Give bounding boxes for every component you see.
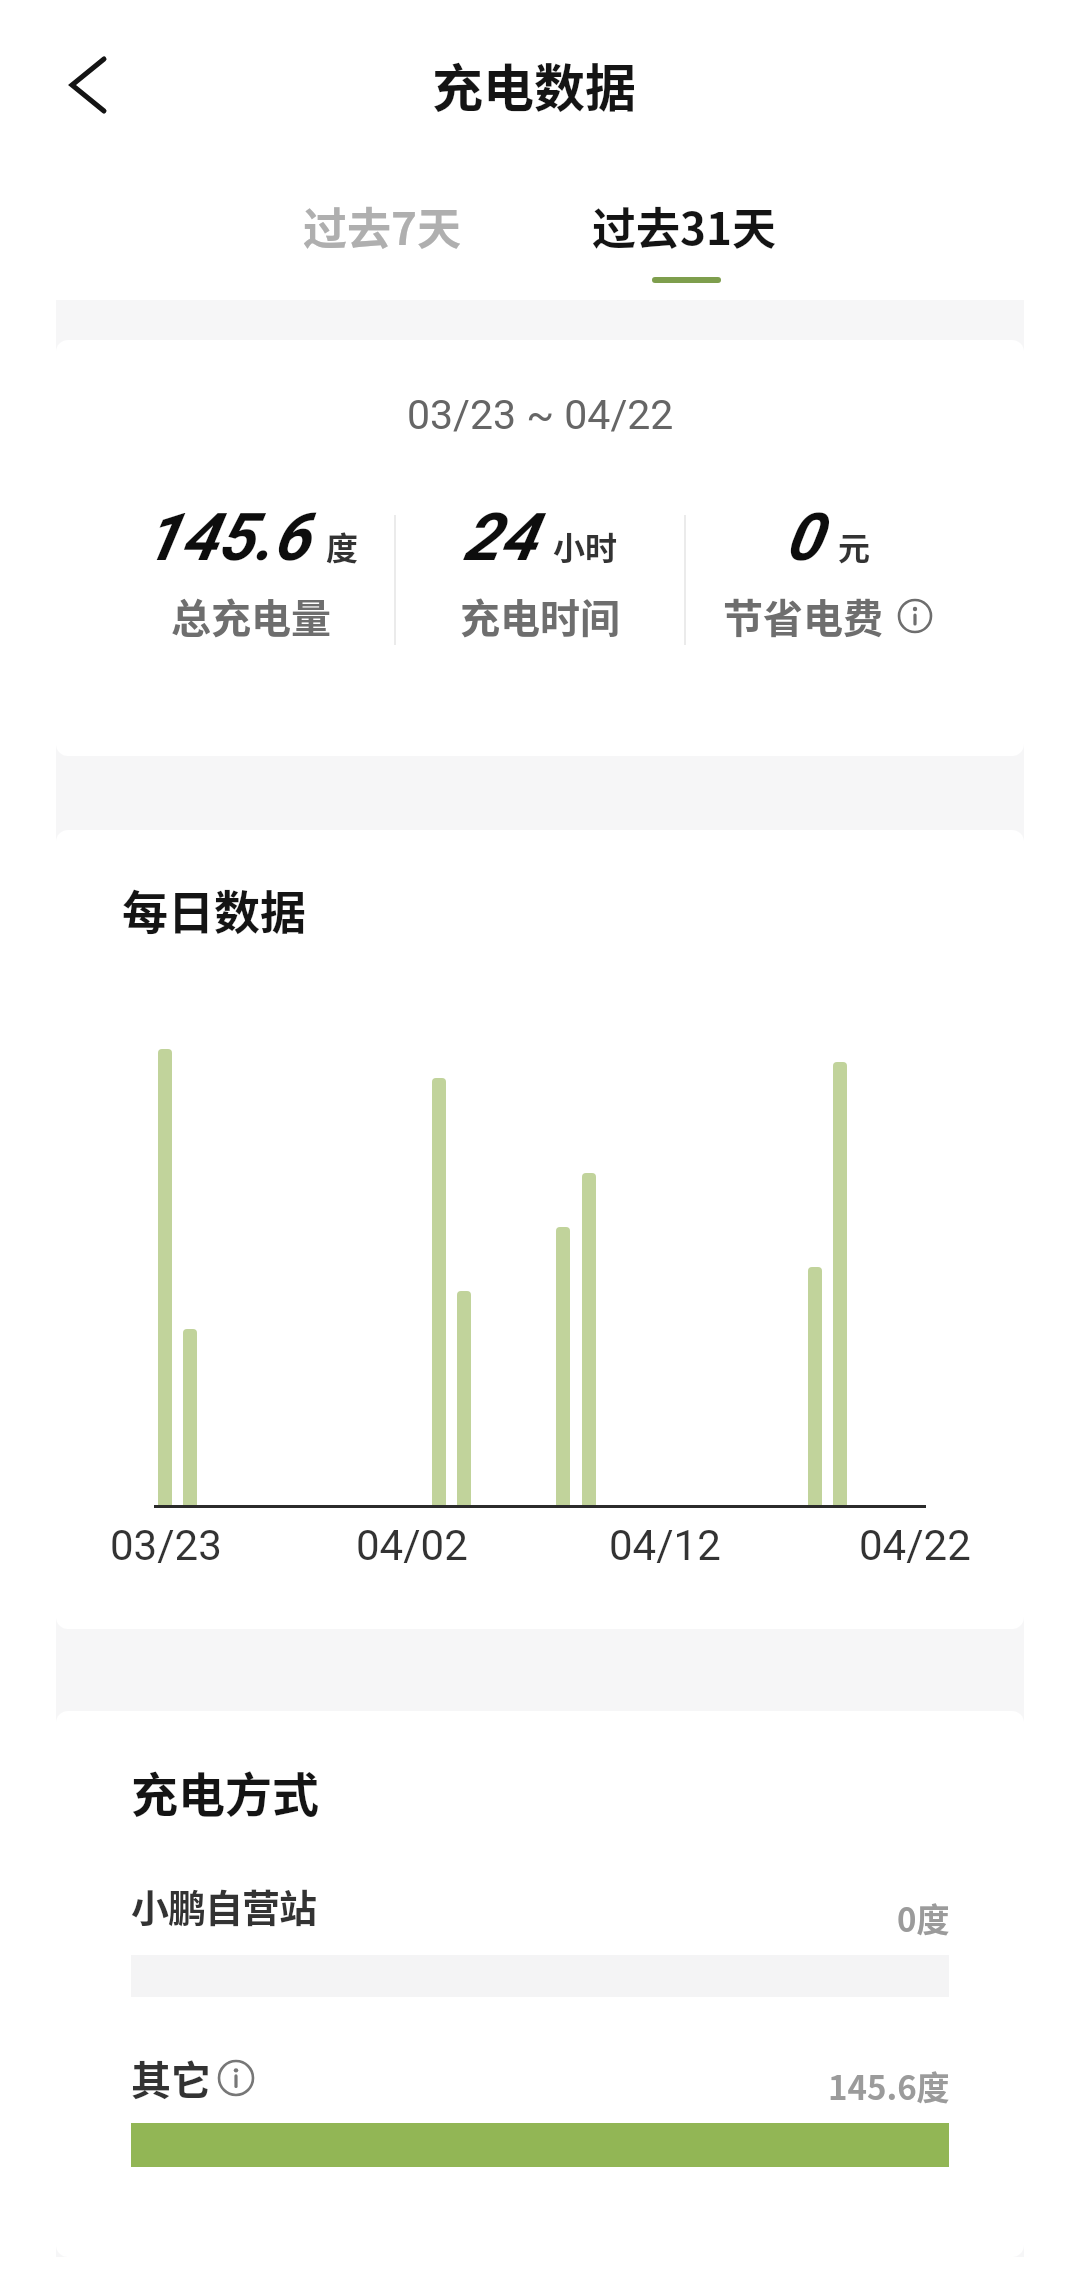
staticText: 145.6度 bbox=[828, 2062, 950, 2110]
staticText: 04/12 bbox=[609, 1521, 721, 1570]
staticText: 04/22 bbox=[859, 1521, 971, 1570]
staticText: 小鹏自营站 bbox=[131, 1878, 317, 1933]
staticText: 过去31天 bbox=[592, 194, 776, 258]
staticText: 小时 bbox=[553, 523, 618, 569]
staticText: 03/23 ~ 04/22 bbox=[407, 391, 674, 439]
button[interactable] bbox=[215, 2057, 257, 2099]
button[interactable] bbox=[56, 49, 128, 121]
button[interactable]: 过去7天 bbox=[232, 186, 532, 266]
staticText: 总充电量 bbox=[171, 587, 331, 645]
staticText: 充电数据 bbox=[432, 48, 637, 122]
staticText: 0 bbox=[785, 499, 822, 576]
staticText: 充电方式 bbox=[131, 1757, 319, 1825]
staticText: 04/02 bbox=[356, 1521, 468, 1570]
staticText: 145.6 bbox=[144, 499, 310, 576]
button[interactable]: 过去31天 bbox=[534, 186, 834, 266]
staticText: 24 bbox=[463, 499, 537, 576]
button[interactable] bbox=[131, 1880, 951, 1940]
staticText: 度 bbox=[326, 523, 359, 569]
staticText: 节省电费 bbox=[723, 587, 883, 645]
staticText: 元 bbox=[838, 523, 871, 569]
staticText: 每日数据 bbox=[122, 876, 306, 943]
staticText: 充电时间 bbox=[460, 587, 620, 645]
staticText: 03/23 bbox=[110, 1521, 222, 1570]
staticText: 过去7天 bbox=[303, 194, 461, 258]
staticText: 其它 bbox=[131, 2049, 211, 2107]
staticText: 0度 bbox=[897, 1894, 950, 1942]
